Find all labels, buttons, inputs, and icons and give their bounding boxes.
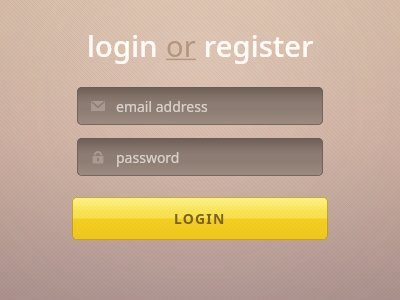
staticText: register <box>196 26 314 65</box>
staticText: email address <box>116 97 208 116</box>
staticText: password <box>116 148 180 167</box>
button[interactable]: LOGIN <box>72 197 328 240</box>
button[interactable]: password <box>77 138 323 176</box>
staticText: or <box>166 26 196 65</box>
staticText: login <box>87 26 166 65</box>
staticText: LOGIN <box>174 209 226 228</box>
button[interactable]: email address <box>77 87 323 125</box>
